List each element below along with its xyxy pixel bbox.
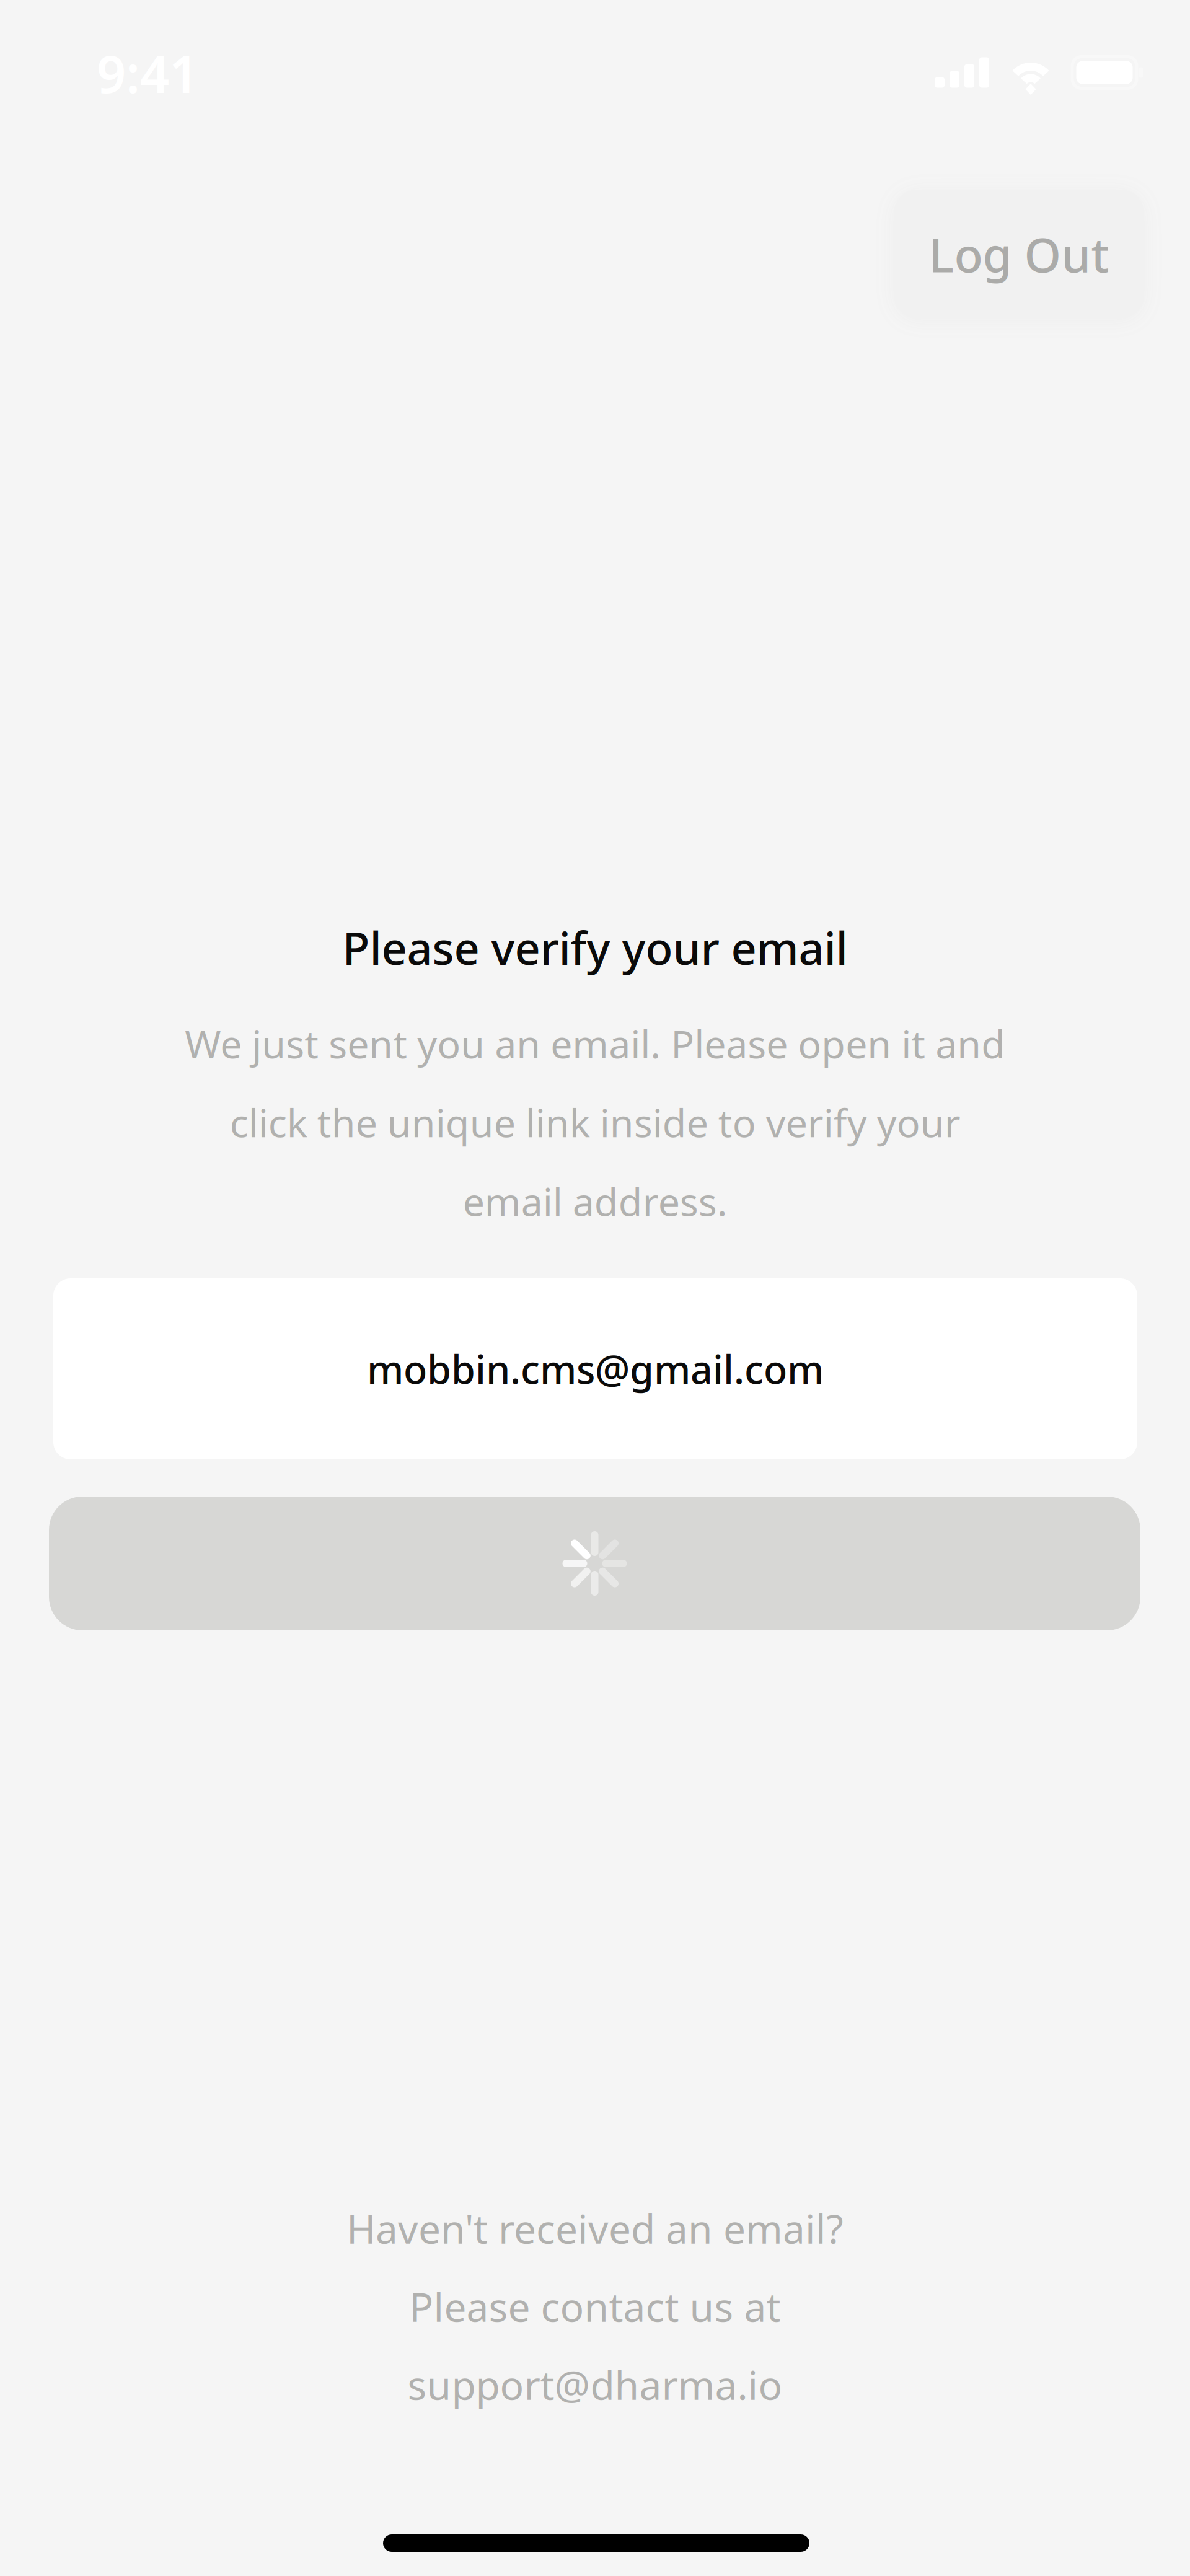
button[interactable]: Log Out	[894, 190, 1144, 319]
staticText: We just sent you an email. Please open i…	[185, 1018, 1005, 1227]
staticText: mobbin.cms@gmail.com	[367, 1343, 824, 1395]
button[interactable]: Sending, please wait	[49, 1497, 1140, 1630]
staticText: Please verify your email	[342, 918, 848, 977]
staticText: Haven't received an email?	[346, 2202, 844, 2255]
staticText: 9:41	[97, 39, 198, 107]
staticText: Please contact us at	[409, 2280, 781, 2333]
staticText: Log Out	[929, 223, 1109, 285]
staticText: support@dharma.io	[408, 2358, 782, 2411]
